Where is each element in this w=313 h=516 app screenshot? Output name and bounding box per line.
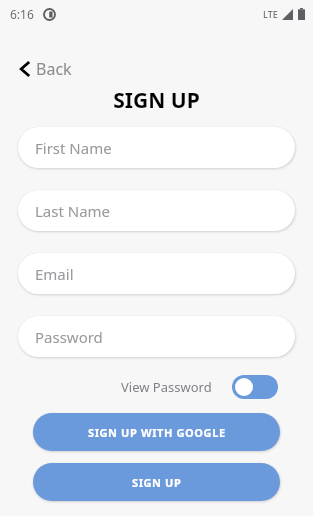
- staticText: View Password: [121, 378, 212, 396]
- button[interactable]: Last Name: [18, 190, 295, 231]
- staticText: SIGN UP: [132, 475, 182, 490]
- staticText: SIGN UP WITH GOOGLE: [88, 425, 226, 440]
- button[interactable]: Email: [18, 253, 295, 294]
- staticText: Email: [35, 264, 74, 284]
- button[interactable]: SIGN UP WITH GOOGLE: [33, 413, 280, 451]
- button[interactable]: Password: [18, 316, 295, 357]
- staticText: Last Name: [35, 201, 111, 221]
- button[interactable]: SIGN UP: [33, 463, 280, 501]
- button[interactable]: Back: [16, 54, 76, 84]
- staticText: Back: [36, 58, 72, 80]
- staticText: SIGN UP: [0, 86, 313, 115]
- staticText: LTE: [263, 8, 278, 20]
- staticText: 6:16: [10, 6, 34, 22]
- staticText: First Name: [35, 138, 112, 158]
- button[interactable]: View Password toggle: [232, 375, 278, 399]
- button[interactable]: First Name: [18, 127, 295, 168]
- staticText: Password: [35, 327, 103, 347]
